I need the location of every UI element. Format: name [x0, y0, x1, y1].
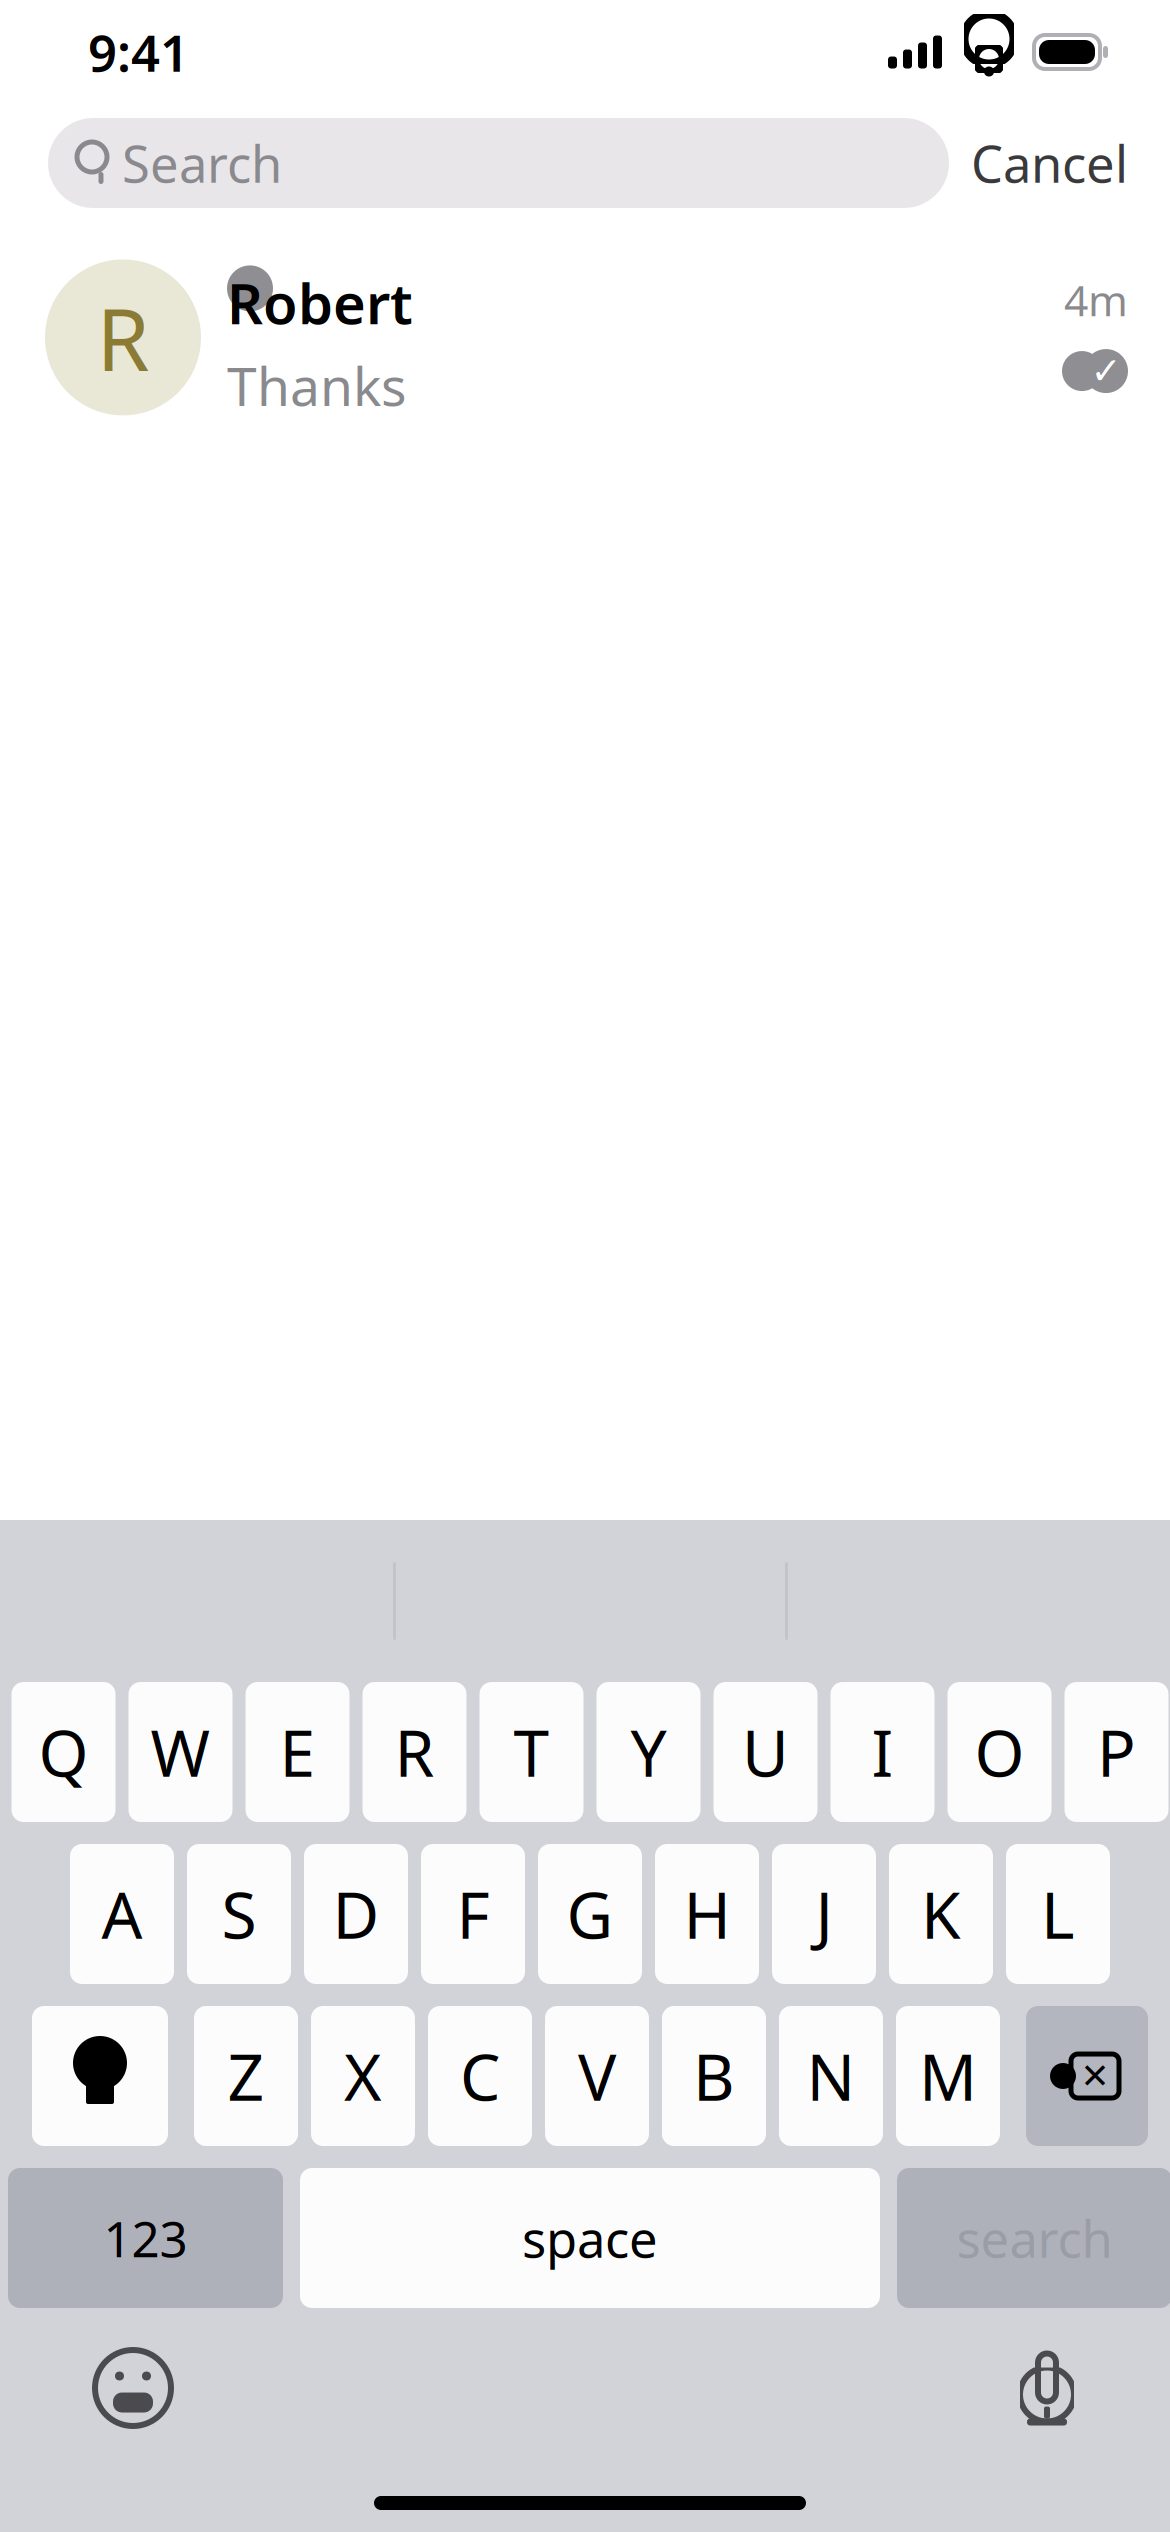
button[interactable]: Q: [11, 1682, 115, 1822]
button[interactable]: Shift: [32, 2006, 168, 2146]
button[interactable]: N: [779, 2006, 883, 2146]
staticText: Thanks: [227, 350, 407, 421]
staticText: 123: [103, 2205, 187, 2271]
staticText: Search: [122, 129, 282, 197]
button[interactable]: T: [479, 1682, 583, 1822]
button[interactable]: K: [889, 1844, 993, 1984]
button[interactable]: Y: [596, 1682, 700, 1822]
staticText: O: [974, 1709, 1024, 1794]
button[interactable]: O: [947, 1682, 1051, 1822]
staticText: Robert: [227, 265, 413, 340]
button[interactable]: 123: [8, 2168, 283, 2308]
button[interactable]: R: [0, 222, 1170, 432]
staticText: C: [460, 2033, 500, 2118]
staticText: A: [101, 1871, 142, 1956]
button[interactable]: A: [70, 1844, 174, 1984]
button[interactable]: search: [897, 2168, 1170, 2308]
button[interactable]: Dictate: [995, 2336, 1099, 2440]
button[interactable]: L: [1006, 1844, 1110, 1984]
button[interactable]: space: [300, 2168, 880, 2308]
staticText: P: [1097, 1709, 1136, 1794]
button[interactable]: W: [128, 1682, 232, 1822]
button[interactable]: F: [421, 1844, 525, 1984]
button[interactable]: X: [311, 2006, 415, 2146]
staticText: H: [683, 1871, 730, 1956]
staticText: W: [150, 1709, 210, 1794]
staticText: search: [956, 2204, 1112, 2272]
button[interactable]: S: [187, 1844, 291, 1984]
staticText: I: [871, 1709, 893, 1794]
staticText: U: [742, 1709, 789, 1794]
staticText: V: [578, 2033, 616, 2118]
staticText: Cancel: [971, 129, 1128, 197]
button[interactable]: G: [538, 1844, 642, 1984]
button[interactable]: M: [896, 2006, 1000, 2146]
staticText: Q: [38, 1709, 88, 1794]
staticText: 9:41: [88, 18, 189, 86]
button[interactable]: U: [713, 1682, 817, 1822]
button[interactable]: B: [662, 2006, 766, 2146]
staticText: ✓: [1090, 350, 1121, 392]
staticText: N: [806, 2033, 855, 2118]
button[interactable]: Emoji: [81, 2336, 185, 2440]
staticText: D: [332, 1871, 379, 1956]
staticText: ✕: [1080, 2056, 1109, 2096]
staticText: space: [522, 2204, 658, 2272]
staticText: T: [513, 1709, 549, 1794]
button[interactable]: J: [772, 1844, 876, 1984]
staticText: Z: [227, 2033, 264, 2118]
button[interactable]: E: [245, 1682, 349, 1822]
button[interactable]: Delete: [1026, 2006, 1148, 2146]
staticText: S: [221, 1871, 256, 1956]
staticText: B: [693, 2033, 735, 2118]
staticText: J: [815, 1871, 832, 1956]
staticText: R: [96, 281, 149, 394]
button[interactable]: I: [830, 1682, 934, 1822]
button[interactable]: Search: [48, 118, 949, 208]
button[interactable]: V: [545, 2006, 649, 2146]
button[interactable]: C: [428, 2006, 532, 2146]
staticText: X: [344, 2033, 382, 2118]
staticText: R: [394, 1709, 434, 1794]
staticText: E: [279, 1709, 315, 1794]
button[interactable]: Z: [194, 2006, 298, 2146]
staticText: Y: [630, 1709, 666, 1794]
button[interactable]: H: [655, 1844, 759, 1984]
button[interactable]: P: [1064, 1682, 1168, 1822]
button[interactable]: R: [362, 1682, 466, 1822]
button[interactable]: D: [304, 1844, 408, 1984]
staticText: M: [919, 2033, 977, 2118]
staticText: G: [566, 1871, 613, 1956]
staticText: L: [1041, 1871, 1075, 1956]
button[interactable]: Cancel: [971, 113, 1128, 213]
staticText: F: [456, 1871, 489, 1956]
staticText: K: [921, 1871, 961, 1956]
staticText: 4m: [1064, 271, 1128, 328]
